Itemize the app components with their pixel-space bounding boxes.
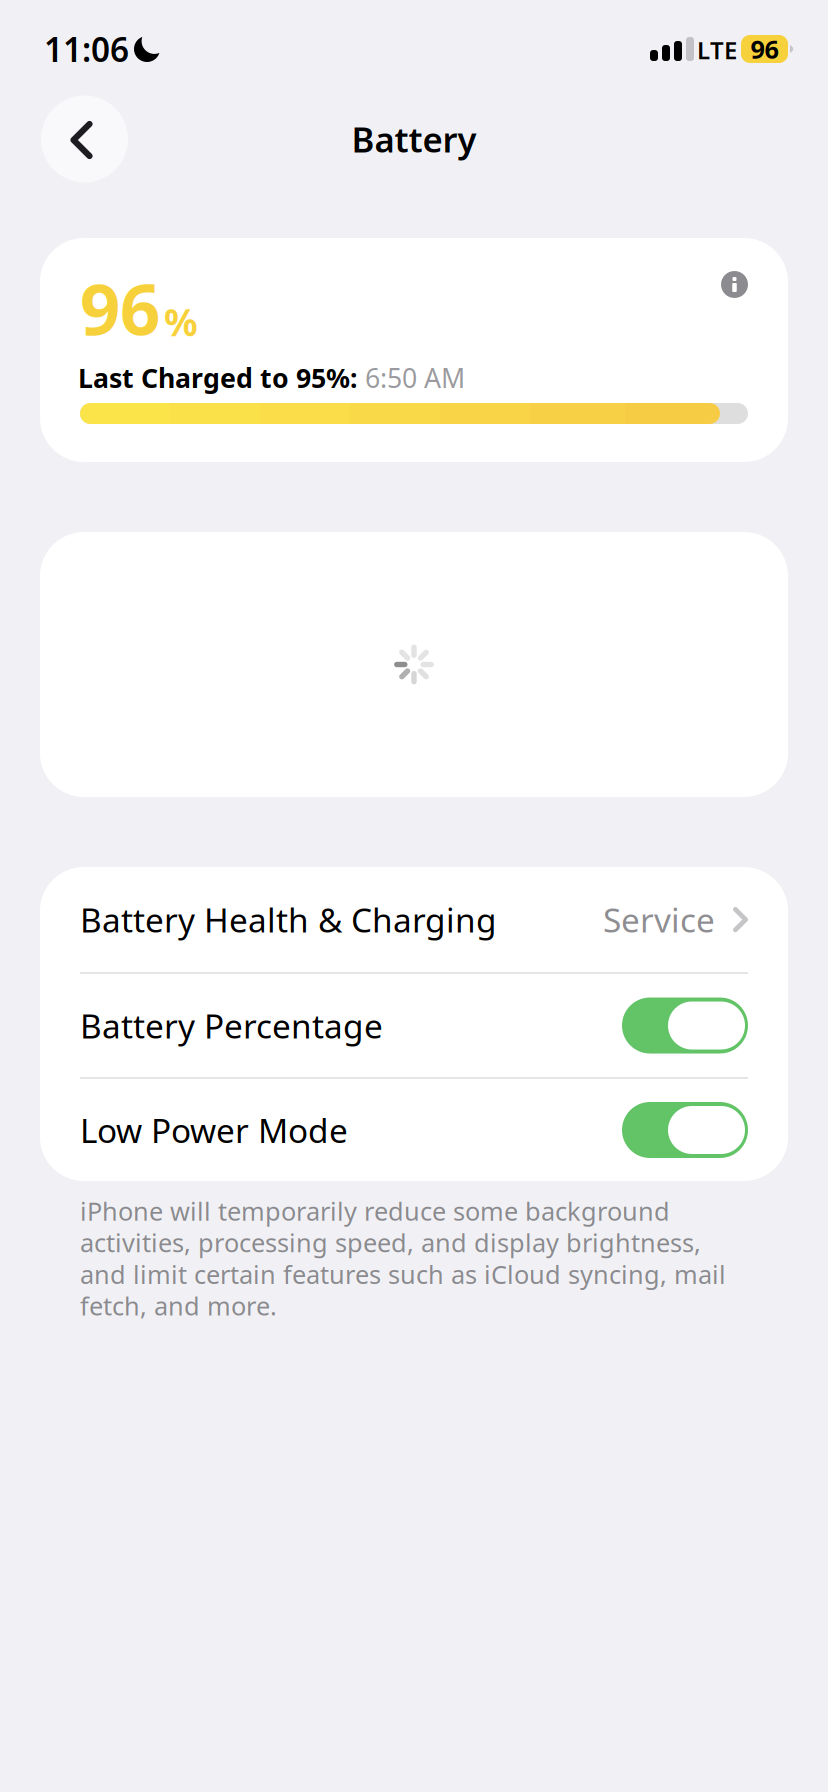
staticText: 6:50 AM — [365, 360, 465, 395]
staticText: Service — [603, 897, 715, 942]
button[interactable]: Battery Percentage — [40, 974, 788, 1077]
button[interactable]: Battery usage information — [721, 271, 748, 298]
button[interactable]: Battery Health & Charging — [40, 867, 788, 972]
staticText: Last Charged to 95%: — [78, 360, 357, 395]
staticText: 96 — [750, 32, 778, 66]
staticText: 96 — [80, 261, 160, 355]
staticText: Battery Health & Charging — [80, 897, 497, 942]
staticText: Battery — [351, 116, 476, 162]
staticText: Battery Percentage — [80, 1003, 383, 1048]
staticText: 11:06 — [44, 27, 129, 71]
staticText: % — [164, 297, 198, 347]
button[interactable]: Back — [41, 95, 128, 182]
staticText: Low Power Mode — [80, 1108, 348, 1152]
staticText: iPhone will temporarily reduce some back… — [80, 1194, 726, 1323]
staticText: LTE — [697, 34, 737, 66]
button[interactable]: Low Power Mode — [40, 1079, 788, 1181]
